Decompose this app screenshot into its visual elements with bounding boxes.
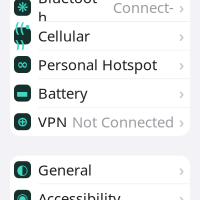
button[interactable]: ❋ — [10, 0, 190, 21]
staticText: Accessibility — [38, 189, 120, 200]
button[interactable]: ◉ — [10, 184, 190, 200]
staticText: Not Connected — [113, 0, 174, 36]
staticText: › — [179, 159, 184, 180]
button[interactable]: ▬ — [10, 79, 190, 107]
staticText: VPN — [38, 112, 67, 131]
staticText: Personal Hotspot — [38, 55, 157, 74]
staticText: › — [179, 111, 184, 132]
staticText: Cellular — [38, 26, 90, 46]
staticText: › — [179, 54, 184, 75]
staticText: ∞ — [17, 57, 28, 72]
staticText: › — [179, 25, 184, 46]
staticText: › — [179, 188, 184, 200]
staticText: General — [38, 160, 92, 179]
button[interactable]: ∞ — [10, 50, 190, 78]
staticText: Not Connected — [72, 112, 174, 131]
button[interactable]: ◐ — [10, 156, 190, 184]
staticText: › — [179, 0, 184, 18]
staticText: ⊕ — [17, 114, 28, 129]
staticText: ((•)) — [15, 18, 30, 54]
staticText: Bluetooth — [38, 0, 102, 27]
staticText: ◐ — [16, 162, 28, 177]
staticText: ▬ — [16, 85, 29, 101]
staticText: ❋ — [17, 0, 28, 15]
staticText: › — [179, 82, 184, 104]
staticText: Battery — [38, 83, 87, 103]
button[interactable]: ⊕ — [10, 108, 190, 136]
staticText: ◉ — [16, 191, 28, 200]
button[interactable]: ((•)) — [10, 22, 190, 50]
